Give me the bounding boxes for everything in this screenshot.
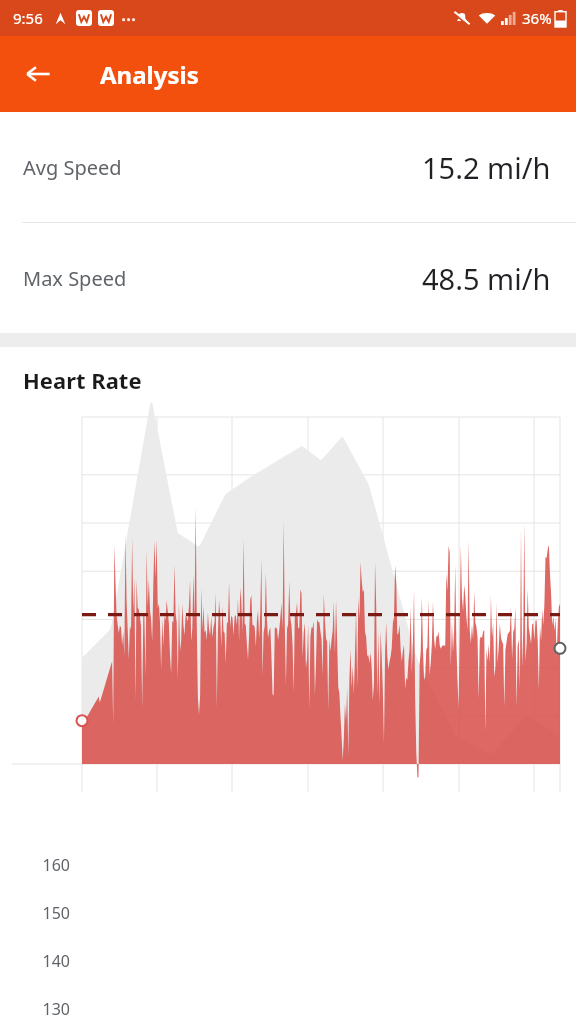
staticText: 150 <box>38 902 70 924</box>
staticText: Avg Speed <box>23 154 122 181</box>
staticText: 130 <box>38 998 70 1020</box>
staticText: Max Speed <box>23 265 127 292</box>
staticText: 140 <box>38 950 70 972</box>
staticText: 48.5 mi/h <box>422 259 551 298</box>
button[interactable]: Avg Speed <box>0 112 576 222</box>
button[interactable]: Back <box>12 48 64 100</box>
staticText: 9:56 <box>13 8 43 28</box>
staticText: Analysis <box>100 58 199 91</box>
staticText: Heart Rate <box>23 365 142 395</box>
staticText: 36% <box>522 8 552 28</box>
staticText: 15.2 mi/h <box>422 148 551 187</box>
staticText: 160 <box>38 854 70 876</box>
button[interactable]: Max Speed <box>0 223 576 333</box>
